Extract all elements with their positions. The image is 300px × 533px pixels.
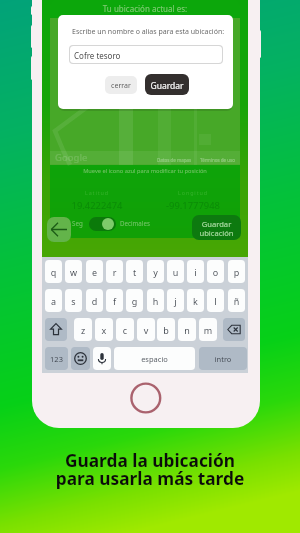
staticText: Longitud [146,189,240,196]
staticText: f [106,295,123,312]
button[interactable]: r [106,260,123,283]
staticText: espacio [114,354,195,370]
button[interactable] [45,318,67,341]
button[interactable] [223,318,245,341]
staticText: Guardar [145,80,189,95]
button[interactable] [93,347,111,370]
button[interactable]: p [228,260,245,283]
button[interactable]: a [45,289,62,312]
button[interactable]: i [187,260,204,283]
staticText: o [207,266,224,283]
staticText: Términos de uso [200,157,235,163]
staticText: ñ [228,295,245,312]
button[interactable]: k [187,289,204,312]
staticText: Datos de mapas [157,157,192,163]
button[interactable]: y [147,260,164,283]
button[interactable]: 123 [45,347,68,370]
staticText: Google [55,151,88,164]
button[interactable]: v [137,318,155,341]
staticText: b [157,324,175,341]
button[interactable]: l [207,289,224,312]
staticText: -99.1777948 [146,199,240,212]
staticText: v [137,324,155,341]
staticText: c [116,324,134,341]
staticText: j [167,295,184,312]
staticText: x [95,324,113,341]
button[interactable]: cerrar [105,76,137,94]
button[interactable]: z [74,318,92,341]
staticText: n [178,324,196,341]
button[interactable]: s [65,289,82,312]
staticText: Seg [72,219,83,227]
staticText: Guardar ubicación [192,219,241,240]
staticText: 19.4222474 [50,199,144,212]
button[interactable]: c [116,318,134,341]
button[interactable]: Cofre tesoro [69,45,223,64]
button[interactable]: espacio [114,347,195,370]
staticText: h [147,295,164,312]
staticText: z [74,324,92,341]
button[interactable]: f [106,289,123,312]
button[interactable]: Guardar [145,74,189,95]
button[interactable]: t [126,260,143,283]
button[interactable]: j [167,289,184,312]
staticText: Cofre tesoro [74,50,121,61]
button[interactable]: o [207,260,224,283]
button[interactable]: Guardar ubicación [192,215,241,240]
staticText: g [126,295,143,312]
staticText: m [199,324,217,341]
staticText: i [187,266,204,283]
staticText: s [65,295,82,312]
other: Inicio [128,380,164,416]
button[interactable]: ñ [228,289,245,312]
other: Dictado por voz [93,347,111,370]
staticText: Tu ubicación actual es: [50,3,240,14]
button[interactable]: Atrás [47,217,71,242]
button[interactable]: h [147,289,164,312]
staticText: cerrar [105,81,137,94]
staticText: Guarda la ubicación para usarla más tard… [0,449,300,490]
button[interactable]: e [86,260,103,283]
staticText: y [147,266,164,283]
staticText: a [45,295,62,312]
button[interactable]: d [86,289,103,312]
button[interactable]: u [167,260,184,283]
other: Mayúsculas [45,318,67,341]
staticText: u [167,266,184,283]
other: Borrar [223,318,245,341]
staticText: q [45,266,62,283]
staticText: e [86,266,103,283]
staticText: r [106,266,123,283]
button[interactable]: m [199,318,217,341]
button[interactable]: q [45,260,62,283]
button[interactable]: g [126,289,143,312]
staticText: l [207,295,224,312]
staticText: Latitud [50,189,144,196]
staticText: Escribe un nombre o alias para esta ubic… [72,27,225,37]
button[interactable]: b [157,318,175,341]
staticText: t [126,266,143,283]
button[interactable]: Decimales [89,217,116,231]
staticText: Mueve el icono azul para modificar tu po… [50,167,240,175]
button[interactable]: n [178,318,196,341]
staticText: 123 [45,354,68,370]
button[interactable]: w [65,260,82,283]
staticText: p [228,266,245,283]
staticText: intro [199,354,247,370]
staticText: k [187,295,204,312]
button[interactable]: intro [199,347,247,370]
staticText: d [86,295,103,312]
staticText: w [65,266,82,283]
button[interactable] [71,347,90,370]
staticText: Decimales [120,219,150,227]
other: Emoji [71,347,90,370]
button[interactable]: x [95,318,113,341]
